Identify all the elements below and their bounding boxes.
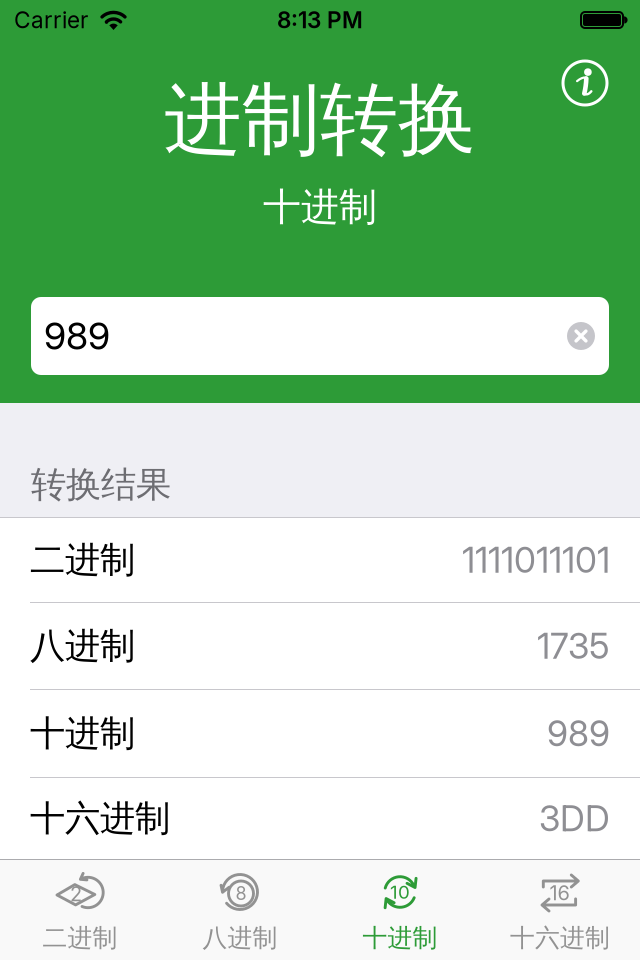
button[interactable]: 八进制	[0, 603, 640, 689]
button[interactable]: 2	[0, 860, 160, 960]
staticText: 十六进制	[30, 796, 170, 841]
staticText: 十六进制	[510, 922, 610, 954]
staticText: 16	[549, 881, 569, 905]
staticText: 二进制	[30, 538, 135, 582]
staticText: 转换结果	[31, 462, 171, 507]
staticText: 八进制	[202, 922, 277, 954]
staticText: Carrier	[14, 6, 88, 34]
staticText: 989	[44, 313, 110, 359]
staticText: 十进制	[263, 183, 377, 231]
button[interactable]: 十六进制	[0, 778, 640, 859]
button[interactable]: Info	[561, 59, 608, 106]
staticText: 八进制	[30, 624, 135, 668]
button[interactable]: Number input field	[31, 297, 609, 375]
staticText: 二进制	[42, 922, 117, 954]
button[interactable]: 16	[480, 860, 640, 960]
button[interactable]: 10	[320, 860, 480, 960]
button[interactable]: 8	[160, 860, 320, 960]
staticText: 1111011101	[462, 539, 610, 581]
staticText: 8	[235, 883, 246, 904]
staticText: 1735	[537, 625, 610, 667]
staticText: 8:13 PM	[277, 6, 363, 34]
staticText: 十进制	[30, 711, 135, 756]
button[interactable]: 十进制	[0, 690, 640, 777]
staticText: 进制转换	[164, 71, 476, 169]
button[interactable]: 二进制	[0, 518, 640, 602]
staticText: 2	[70, 882, 82, 906]
staticText: 10	[390, 881, 410, 903]
staticText: 十进制	[362, 922, 437, 954]
staticText: 989	[547, 712, 610, 755]
staticText: 3DD	[539, 797, 610, 840]
